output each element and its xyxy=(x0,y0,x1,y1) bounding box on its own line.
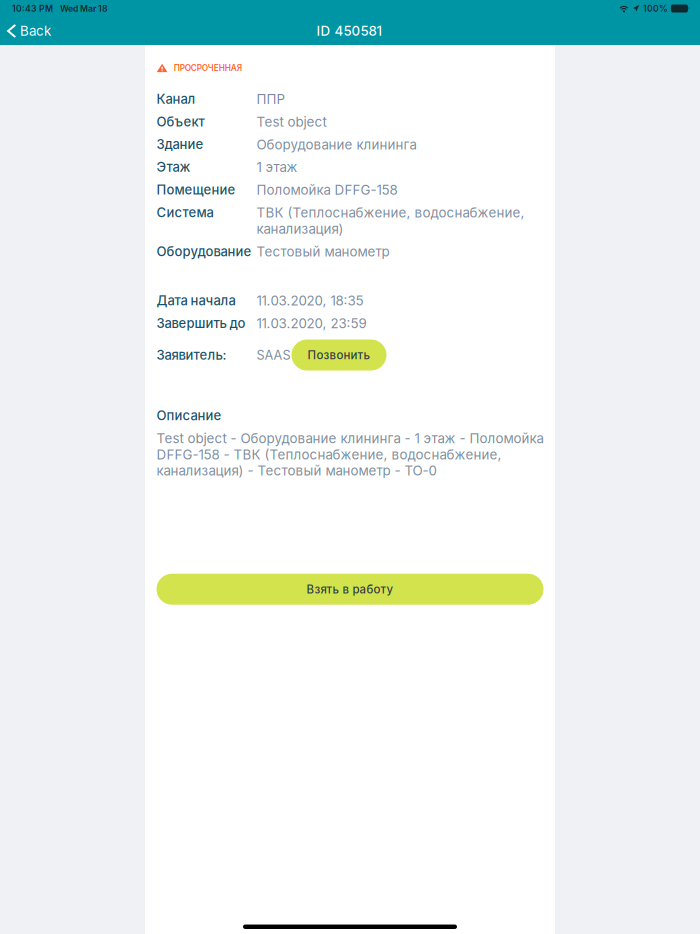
staticText: 11.03.2020, 23:59 xyxy=(256,315,366,331)
staticText: ID 450581 xyxy=(316,23,382,39)
staticText: Канал xyxy=(156,91,195,107)
staticText: Позвонить xyxy=(307,348,370,362)
staticText: Описание xyxy=(156,407,221,423)
staticText: Оборудование xyxy=(156,243,251,259)
staticText: Test object - Оборудование клининга - 1 … xyxy=(156,430,543,479)
staticText: SAAS xyxy=(256,347,290,363)
staticText: Тестовый манометр xyxy=(256,243,389,260)
staticText: 11.03.2020, 18:35 xyxy=(256,293,363,309)
staticText: Test object xyxy=(256,114,326,130)
staticText: ТВК (Теплоснабжение, водоснабжение, кана… xyxy=(256,205,524,237)
staticText: Помещение xyxy=(156,182,235,198)
staticText: 1 этаж xyxy=(256,159,297,175)
staticText: Объект xyxy=(156,114,204,129)
staticText: 10:43 PM xyxy=(12,3,53,14)
staticText: Здание xyxy=(156,136,203,152)
staticText: Этаж xyxy=(156,159,190,175)
staticText: 100% xyxy=(643,3,668,14)
staticText: ПРОСРОЧЕННАЯ xyxy=(174,63,242,73)
staticText: Заявитель: xyxy=(156,347,226,363)
button[interactable]: Взять в работу xyxy=(156,574,543,605)
staticText: Взять в работу xyxy=(306,582,393,596)
staticText: Дата начала xyxy=(156,293,235,308)
staticText: Завершить до xyxy=(156,315,245,331)
staticText: ППР xyxy=(256,91,285,107)
staticText: Оборудование клининга xyxy=(256,136,416,153)
button[interactable]: Back xyxy=(0,17,61,45)
staticText: Back xyxy=(20,23,51,39)
button[interactable]: Позвонить xyxy=(291,339,386,370)
staticText: Система xyxy=(156,205,213,220)
staticText: Поломойка DFFG-158 xyxy=(256,182,397,198)
staticText: Wed Mar 18 xyxy=(60,3,108,14)
